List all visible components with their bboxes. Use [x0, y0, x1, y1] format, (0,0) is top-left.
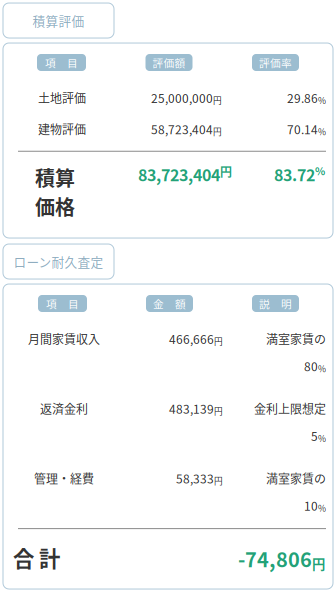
staticText: 10	[304, 497, 318, 514]
staticText: %	[315, 163, 325, 178]
staticText: %	[318, 362, 326, 375]
staticText: 月間家賃収入	[28, 330, 100, 347]
staticText: 円	[220, 163, 232, 180]
staticText: 金 額	[153, 296, 186, 311]
staticText: 合 計	[13, 542, 60, 573]
staticText: %	[318, 94, 326, 106]
staticText: 5	[311, 427, 318, 444]
staticText: 83,723,404	[138, 163, 220, 186]
staticText: %	[318, 432, 326, 444]
staticText: 建物評価	[38, 120, 86, 138]
staticText: 返済金利	[40, 400, 88, 417]
staticText: 管理・経費	[34, 469, 94, 487]
staticText: 483,139	[169, 400, 214, 417]
staticText: -74,806	[238, 544, 312, 573]
staticText: 70.14	[287, 120, 318, 138]
staticText: 土地評価	[38, 89, 86, 106]
staticText: 項 目	[45, 55, 78, 70]
staticText: 評価額	[152, 55, 185, 70]
staticText: 説 明	[259, 296, 292, 311]
staticText: 円	[213, 125, 222, 138]
staticText: 満室家賃の	[266, 330, 326, 347]
button[interactable]: 積算評価	[3, 3, 114, 38]
staticText: 円	[214, 474, 223, 487]
staticText: %	[318, 502, 326, 514]
staticText: 評価率	[259, 55, 292, 70]
staticText: 金利上限想定	[254, 400, 326, 417]
staticText: %	[318, 125, 326, 138]
staticText: 項 目	[46, 296, 79, 311]
button[interactable]: ローン耐久査定	[3, 244, 114, 279]
staticText: ローン耐久査定	[13, 252, 103, 271]
staticText: 円	[213, 94, 222, 106]
staticText: 83.72	[274, 163, 315, 186]
staticText: 25,000,000	[151, 89, 213, 106]
staticText: 58,723,404	[151, 120, 213, 138]
staticText: 58,333	[176, 469, 214, 487]
staticText: 価格	[35, 192, 75, 221]
staticText: 466,666	[169, 330, 214, 347]
staticText: 満室家賃の	[266, 469, 326, 487]
staticText: 積算評価	[32, 11, 84, 30]
staticText: 29.86	[287, 89, 318, 106]
staticText: 80	[304, 357, 318, 375]
staticText: 円	[214, 335, 223, 347]
staticText: 積算	[35, 163, 75, 192]
staticText: 円	[214, 405, 223, 417]
staticText: 円	[312, 554, 325, 573]
